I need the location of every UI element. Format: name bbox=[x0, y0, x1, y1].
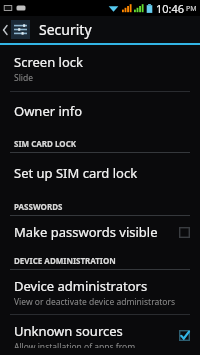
button[interactable]: Unknown sources bbox=[0, 315, 200, 355]
staticText: Unknown sources bbox=[14, 322, 123, 340]
staticText: Owner info bbox=[14, 102, 83, 120]
button[interactable]: Device administrators bbox=[0, 270, 200, 314]
staticText: Allow installation of apps from unknown … bbox=[14, 341, 136, 348]
staticText: Device administrators bbox=[14, 277, 148, 295]
staticText: Security bbox=[39, 20, 92, 39]
button[interactable]: Set up SIM card lock bbox=[0, 153, 200, 194]
staticText: 10:46 bbox=[156, 1, 185, 16]
button[interactable]: Screen lock bbox=[0, 45, 200, 91]
button[interactable]: Unchecked bbox=[177, 225, 192, 240]
staticText: Make passwords visible bbox=[14, 223, 158, 241]
staticText: SIM CARD LOCK bbox=[14, 138, 77, 149]
staticText: DEVICE ADMINISTRATION bbox=[14, 255, 116, 266]
staticText: PASSWORDS bbox=[14, 201, 63, 212]
button[interactable]: Make passwords visible bbox=[0, 216, 200, 248]
staticText: PM bbox=[186, 4, 197, 14]
staticText: Slide bbox=[14, 72, 34, 84]
button[interactable]: Checked bbox=[177, 328, 192, 343]
button[interactable]: Owner info bbox=[0, 92, 200, 131]
button[interactable]: Navigate up bbox=[0, 16, 32, 43]
staticText: Screen lock bbox=[14, 53, 83, 71]
staticText: Set up SIM card lock bbox=[14, 164, 138, 182]
staticText: View or deactivate device administrators bbox=[14, 296, 176, 308]
